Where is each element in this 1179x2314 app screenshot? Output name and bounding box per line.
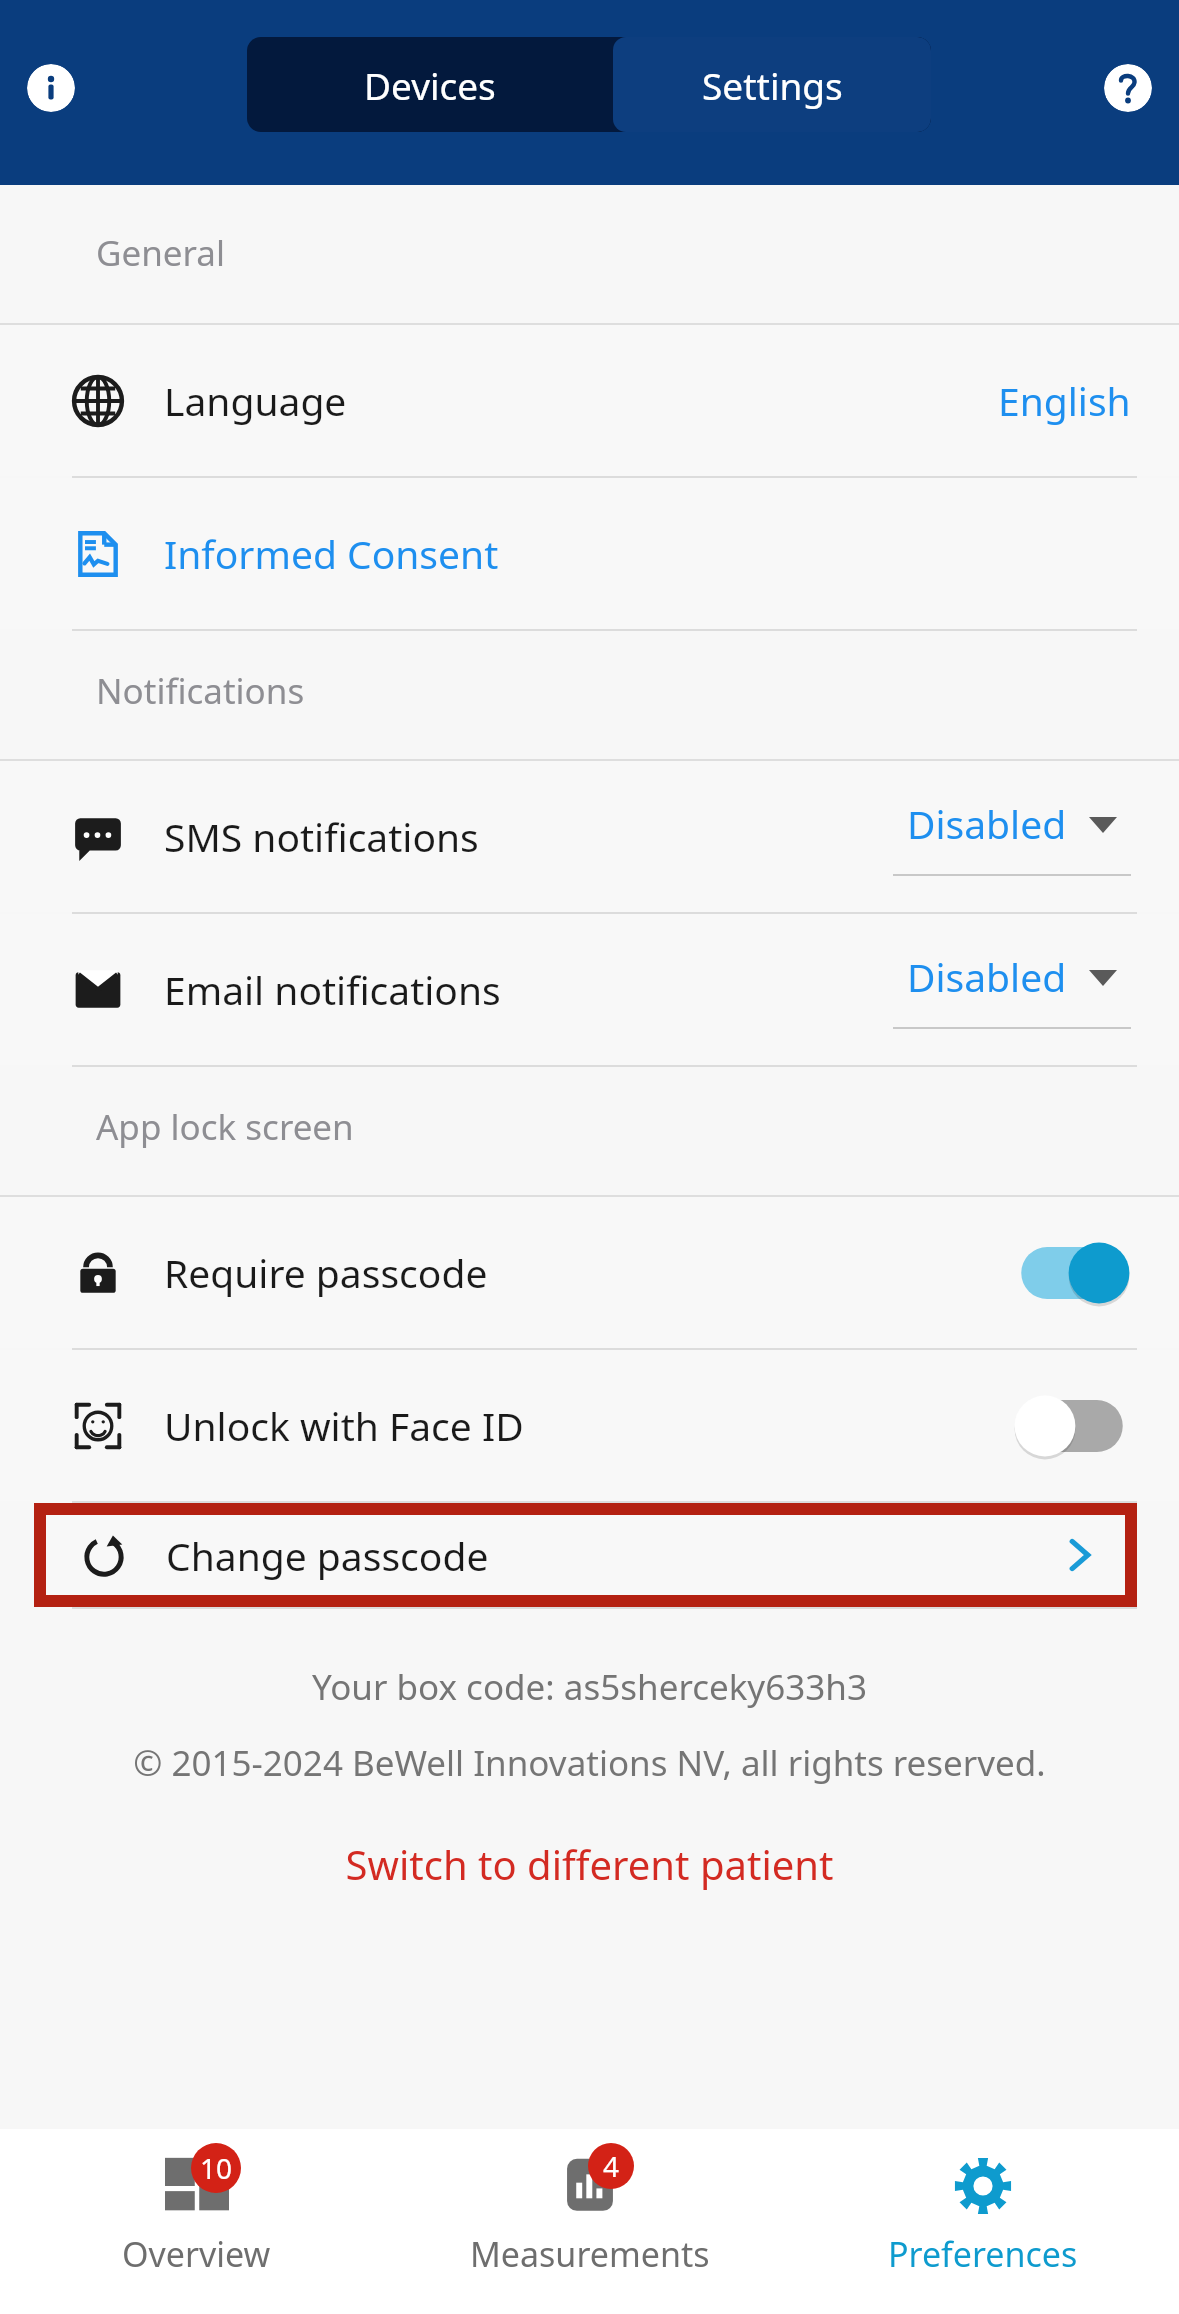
button[interactable]: Email notifications (0, 914, 1179, 1065)
button[interactable]: Toggle off (1013, 1394, 1131, 1458)
button[interactable]: Unlock with Face ID (0, 1350, 1179, 1501)
button[interactable]: Preferences (786, 2129, 1179, 2314)
staticText: Email notifications (164, 963, 501, 1016)
staticText: Disabled (907, 950, 1067, 1003)
staticText: 10 (200, 2149, 233, 2187)
staticText: General (96, 229, 226, 277)
staticText: English (998, 374, 1131, 427)
staticText: Disabled (907, 797, 1067, 850)
button[interactable]: Require passcode (0, 1197, 1179, 1348)
button[interactable]: Toggle on (1013, 1241, 1131, 1305)
staticText: Your box code: as5sherceky633h3 (0, 1663, 1179, 1711)
button[interactable]: Switch to different patient (0, 1837, 1179, 1891)
staticText: Language (164, 374, 347, 427)
staticText: Devices (364, 60, 496, 110)
staticText: Preferences (888, 2231, 1078, 2277)
staticText: SMS notifications (164, 810, 479, 863)
staticText: Notifications (96, 667, 305, 715)
staticText: App lock screen (96, 1103, 354, 1151)
staticText: Settings (702, 60, 843, 110)
staticText: © 2015-2024 BeWell Innovations NV, all r… (0, 1739, 1179, 1787)
button[interactable]: SMS notifications (0, 761, 1179, 912)
button[interactable]: Informed Consent (0, 478, 1179, 629)
button[interactable]: Information (27, 64, 75, 112)
button[interactable]: 4 (393, 2129, 786, 2314)
button[interactable]: Help (1104, 64, 1152, 112)
staticText: Unlock with Face ID (164, 1399, 524, 1452)
button[interactable]: Settings (613, 37, 931, 132)
staticText: Change passcode (166, 1529, 489, 1582)
button[interactable]: Devices (247, 37, 613, 132)
staticText: Overview (122, 2231, 271, 2277)
staticText: Measurements (470, 2231, 710, 2277)
staticText: Informed Consent (164, 527, 499, 580)
staticText: Require passcode (164, 1246, 488, 1299)
staticText: Switch to different patient (0, 1837, 1179, 1891)
button[interactable]: Language (0, 325, 1179, 476)
staticText: 4 (603, 2147, 620, 2185)
button[interactable]: Change passcode (46, 1515, 1125, 1595)
button[interactable]: 10 (0, 2129, 393, 2314)
